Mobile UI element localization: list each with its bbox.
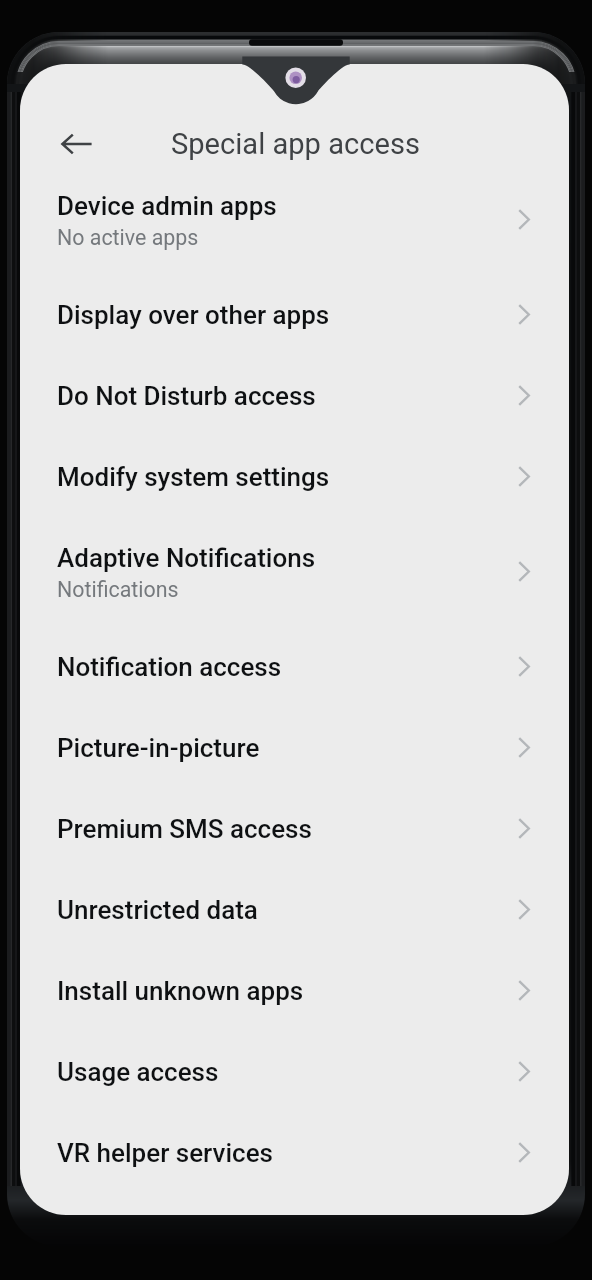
- staticText: No active apps: [57, 225, 199, 250]
- button[interactable]: Display over other apps: [20, 274, 569, 355]
- button[interactable]: Modify system settings: [20, 436, 569, 517]
- staticText: Device admin apps: [57, 191, 277, 221]
- button[interactable]: VR helper services: [20, 1112, 569, 1193]
- staticText: Display over other apps: [57, 300, 330, 330]
- button[interactable]: Device admin apps: [20, 165, 569, 274]
- staticText: Premium SMS access: [57, 814, 312, 844]
- staticText: Notifications: [57, 577, 179, 602]
- staticText: Do Not Disturb access: [57, 381, 316, 411]
- button[interactable]: Do Not Disturb access: [20, 355, 569, 436]
- button[interactable]: Unrestricted data: [20, 869, 569, 950]
- button[interactable]: Picture-in-picture: [20, 707, 569, 788]
- staticText: Unrestricted data: [57, 895, 258, 925]
- button[interactable]: Install unknown apps: [20, 950, 569, 1031]
- button[interactable]: Usage access: [20, 1031, 569, 1112]
- staticText: Adaptive Notifications: [57, 543, 316, 573]
- button[interactable]: Notification access: [20, 626, 569, 707]
- staticText: Install unknown apps: [57, 976, 304, 1006]
- staticText: VR helper services: [57, 1138, 273, 1168]
- staticText: Special app access: [171, 127, 420, 161]
- staticText: Picture-in-picture: [57, 733, 260, 763]
- button[interactable]: Premium SMS access: [20, 788, 569, 869]
- staticText: Notification access: [57, 652, 282, 682]
- button[interactable]: Back: [51, 118, 103, 170]
- staticText: Usage access: [57, 1057, 219, 1087]
- staticText: Modify system settings: [57, 462, 330, 492]
- button[interactable]: Adaptive Notifications: [20, 517, 569, 626]
